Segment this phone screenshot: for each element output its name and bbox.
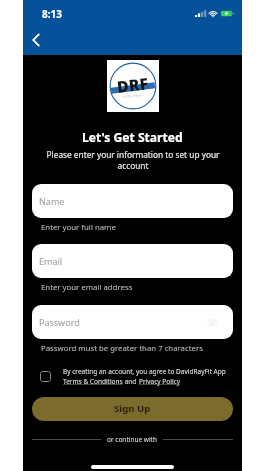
button[interactable]: Back <box>25 29 47 51</box>
staticText: Name <box>39 195 65 207</box>
button[interactable]: Password <box>32 305 233 339</box>
staticText: Password <box>39 316 80 328</box>
staticText: and <box>123 377 139 386</box>
staticText: Let's Get Started <box>82 129 183 145</box>
staticText: P E R S O N A L <box>123 93 144 99</box>
staticText: By creating an account, you agree to Dav… <box>63 367 226 376</box>
button[interactable]: Accept terms <box>40 371 51 382</box>
staticText: Password must be greater than 7 characte… <box>41 343 203 354</box>
staticText: Enter your email address <box>41 282 133 293</box>
other: Toggle password visibility <box>206 316 219 329</box>
staticText: 8:13 <box>42 7 62 21</box>
button[interactable]: Terms & Conditions <box>63 377 123 386</box>
button[interactable]: Email <box>32 244 233 278</box>
staticText: DRF <box>116 72 150 98</box>
button[interactable]: Name <box>32 184 233 218</box>
staticText: Sign Up <box>114 402 151 415</box>
staticText: or continue with <box>107 435 157 444</box>
staticText: Enter your full name <box>41 222 116 233</box>
staticText: Please enter your information to set up … <box>43 149 223 171</box>
staticText: Email <box>39 255 63 267</box>
button[interactable]: Sign Up <box>32 397 233 421</box>
button[interactable]: Privacy Policy <box>139 377 181 386</box>
